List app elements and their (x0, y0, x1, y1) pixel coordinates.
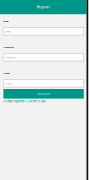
staticText: Name (3, 72, 9, 75)
button[interactable]: CREATE ACCOUNT (3, 89, 84, 99)
staticText: CREATE ACCOUNT (37, 93, 50, 95)
staticText: Already Registered? Click here to login (3, 100, 45, 103)
button[interactable]: Already Registered? Click here to login (3, 100, 84, 103)
staticText: Name (5, 82, 11, 85)
staticText: Register (37, 5, 50, 9)
staticText: Email (5, 30, 11, 33)
staticText: Password (3, 46, 13, 49)
staticText: Password (5, 56, 15, 59)
staticText: Email (3, 20, 9, 23)
